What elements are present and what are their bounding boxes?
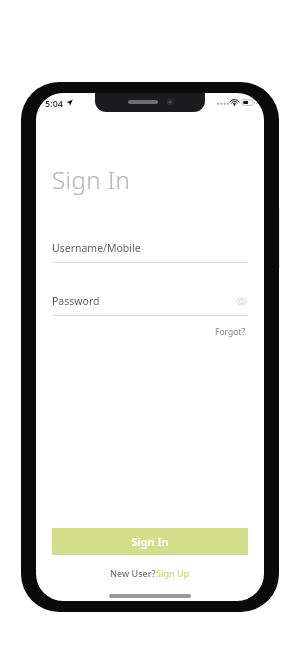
staticText: Username/Mobile bbox=[52, 241, 141, 255]
staticText: Password bbox=[52, 294, 100, 308]
staticText: Sign Up bbox=[156, 567, 190, 579]
staticText: New User? bbox=[110, 567, 156, 579]
staticText: Forgot? bbox=[215, 326, 246, 338]
button[interactable]: Password bbox=[52, 294, 248, 316]
staticText: Sign In bbox=[52, 163, 131, 196]
button[interactable]: Sign In bbox=[52, 528, 248, 555]
button[interactable]: Sign Up bbox=[156, 567, 190, 579]
staticText: Sign In bbox=[131, 534, 169, 549]
button[interactable]: Show password bbox=[234, 294, 248, 308]
button[interactable]: Username/Mobile bbox=[52, 241, 248, 263]
staticText: 5:04 bbox=[45, 97, 63, 109]
button[interactable]: Forgot? bbox=[213, 324, 248, 340]
